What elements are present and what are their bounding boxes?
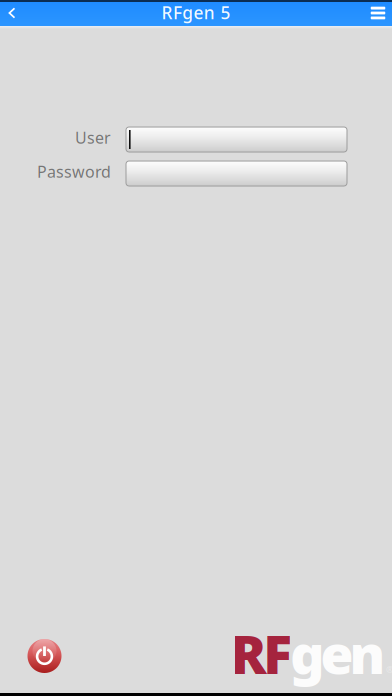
button[interactable]: Password: [126, 161, 347, 186]
button[interactable]: Back: [0, 0, 22, 26]
button[interactable]: Menu: [364, 0, 392, 26]
button[interactable]: User: [126, 127, 347, 152]
button[interactable]: Power: [22, 634, 66, 678]
staticText: Password: [37, 161, 111, 182]
staticText: RFgen 5: [162, 1, 230, 24]
staticText: User: [75, 127, 111, 148]
staticText: RF: [230, 618, 292, 689]
staticText: ®: [386, 663, 392, 676]
staticText: gen: [290, 618, 385, 689]
